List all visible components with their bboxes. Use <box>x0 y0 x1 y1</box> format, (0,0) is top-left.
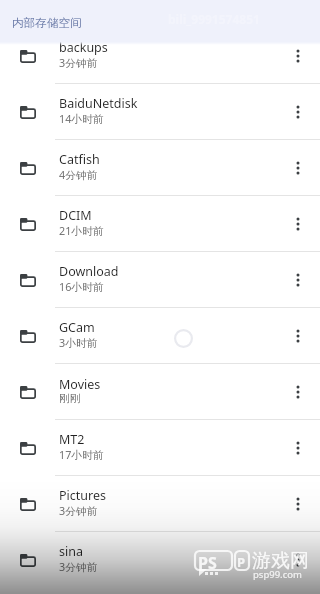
button[interactable]: Pictures <box>0 476 320 532</box>
staticText: Pictures <box>59 487 106 504</box>
button[interactable]: MT2 <box>0 420 320 476</box>
button[interactable]: GCam <box>0 308 320 364</box>
staticText: 游戏网 <box>252 549 309 573</box>
staticText: 刚刚 <box>59 392 81 406</box>
staticText: Movies <box>59 376 101 393</box>
button[interactable]: More options <box>276 252 320 308</box>
staticText: 3分钟前 <box>59 55 98 70</box>
button[interactable]: Download <box>0 252 320 308</box>
button[interactable]: sina <box>0 532 320 588</box>
staticText: PS <box>198 552 217 574</box>
staticText: 21小时前 <box>59 223 104 238</box>
button[interactable]: backups <box>0 28 320 84</box>
button[interactable]: BaiduNetdisk <box>0 84 320 140</box>
staticText: Download <box>59 263 119 280</box>
button[interactable]: More options <box>276 28 320 84</box>
staticText: DCIM <box>59 207 92 224</box>
staticText: Catfish <box>59 151 100 168</box>
staticText: 17小时前 <box>59 447 104 462</box>
button[interactable]: Movies <box>0 364 320 420</box>
button[interactable]: More options <box>276 196 320 252</box>
staticText: MT2 <box>59 431 85 448</box>
button[interactable]: More options <box>276 84 320 140</box>
staticText: 3分钟前 <box>59 559 98 574</box>
staticText: 14小时前 <box>59 111 104 126</box>
button[interactable]: More options <box>276 140 320 196</box>
staticText: GCam <box>59 319 95 336</box>
staticText: 3小时前 <box>59 335 98 350</box>
button[interactable]: More options <box>276 308 320 364</box>
button[interactable]: DCIM <box>0 196 320 252</box>
staticText: sina <box>59 543 83 560</box>
staticText: BaiduNetdisk <box>59 95 138 112</box>
button[interactable]: More options <box>276 476 320 532</box>
staticText: backups <box>59 39 108 56</box>
staticText: 16小时前 <box>59 279 104 294</box>
button[interactable]: More options <box>276 420 320 476</box>
staticText: P <box>237 553 246 571</box>
button[interactable]: 内部存储空间 <box>0 0 320 42</box>
staticText: psp99.com <box>253 568 302 581</box>
button[interactable]: Catfish <box>0 140 320 196</box>
button[interactable]: More options <box>276 532 320 588</box>
button[interactable]: More options <box>276 364 320 420</box>
staticText: 内部存储空间 <box>12 16 82 31</box>
staticText: 3分钟前 <box>59 503 98 518</box>
staticText: 4分钟前 <box>59 167 98 182</box>
